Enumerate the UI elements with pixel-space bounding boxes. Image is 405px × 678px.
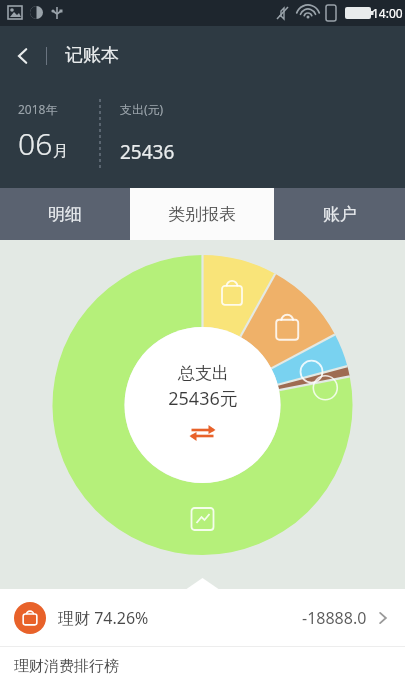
- staticText: 明细: [48, 204, 82, 225]
- button[interactable]: 账户: [274, 188, 405, 240]
- staticText: 14:00: [372, 5, 403, 21]
- button[interactable]: Back: [0, 33, 46, 79]
- staticText: 理财消费排行榜: [14, 657, 119, 676]
- staticText: 记账本: [65, 44, 119, 67]
- staticText: 支出(元): [120, 101, 164, 117]
- button[interactable]: 理财 74.26%: [0, 589, 405, 646]
- staticText: 类别报表: [168, 204, 236, 225]
- staticText: 06: [18, 123, 53, 164]
- button[interactable]: 类别报表: [130, 188, 274, 240]
- staticText: 账户: [323, 204, 357, 225]
- staticText: 25436: [120, 139, 175, 165]
- staticText: 总支出: [178, 363, 229, 384]
- staticText: 25436元: [168, 386, 238, 411]
- staticText: 2018年: [18, 101, 58, 117]
- button[interactable]: 明细: [0, 188, 130, 240]
- staticText: 月: [53, 142, 68, 161]
- staticText: 理财 74.26%: [58, 607, 149, 629]
- staticText: -18888.0: [302, 607, 367, 629]
